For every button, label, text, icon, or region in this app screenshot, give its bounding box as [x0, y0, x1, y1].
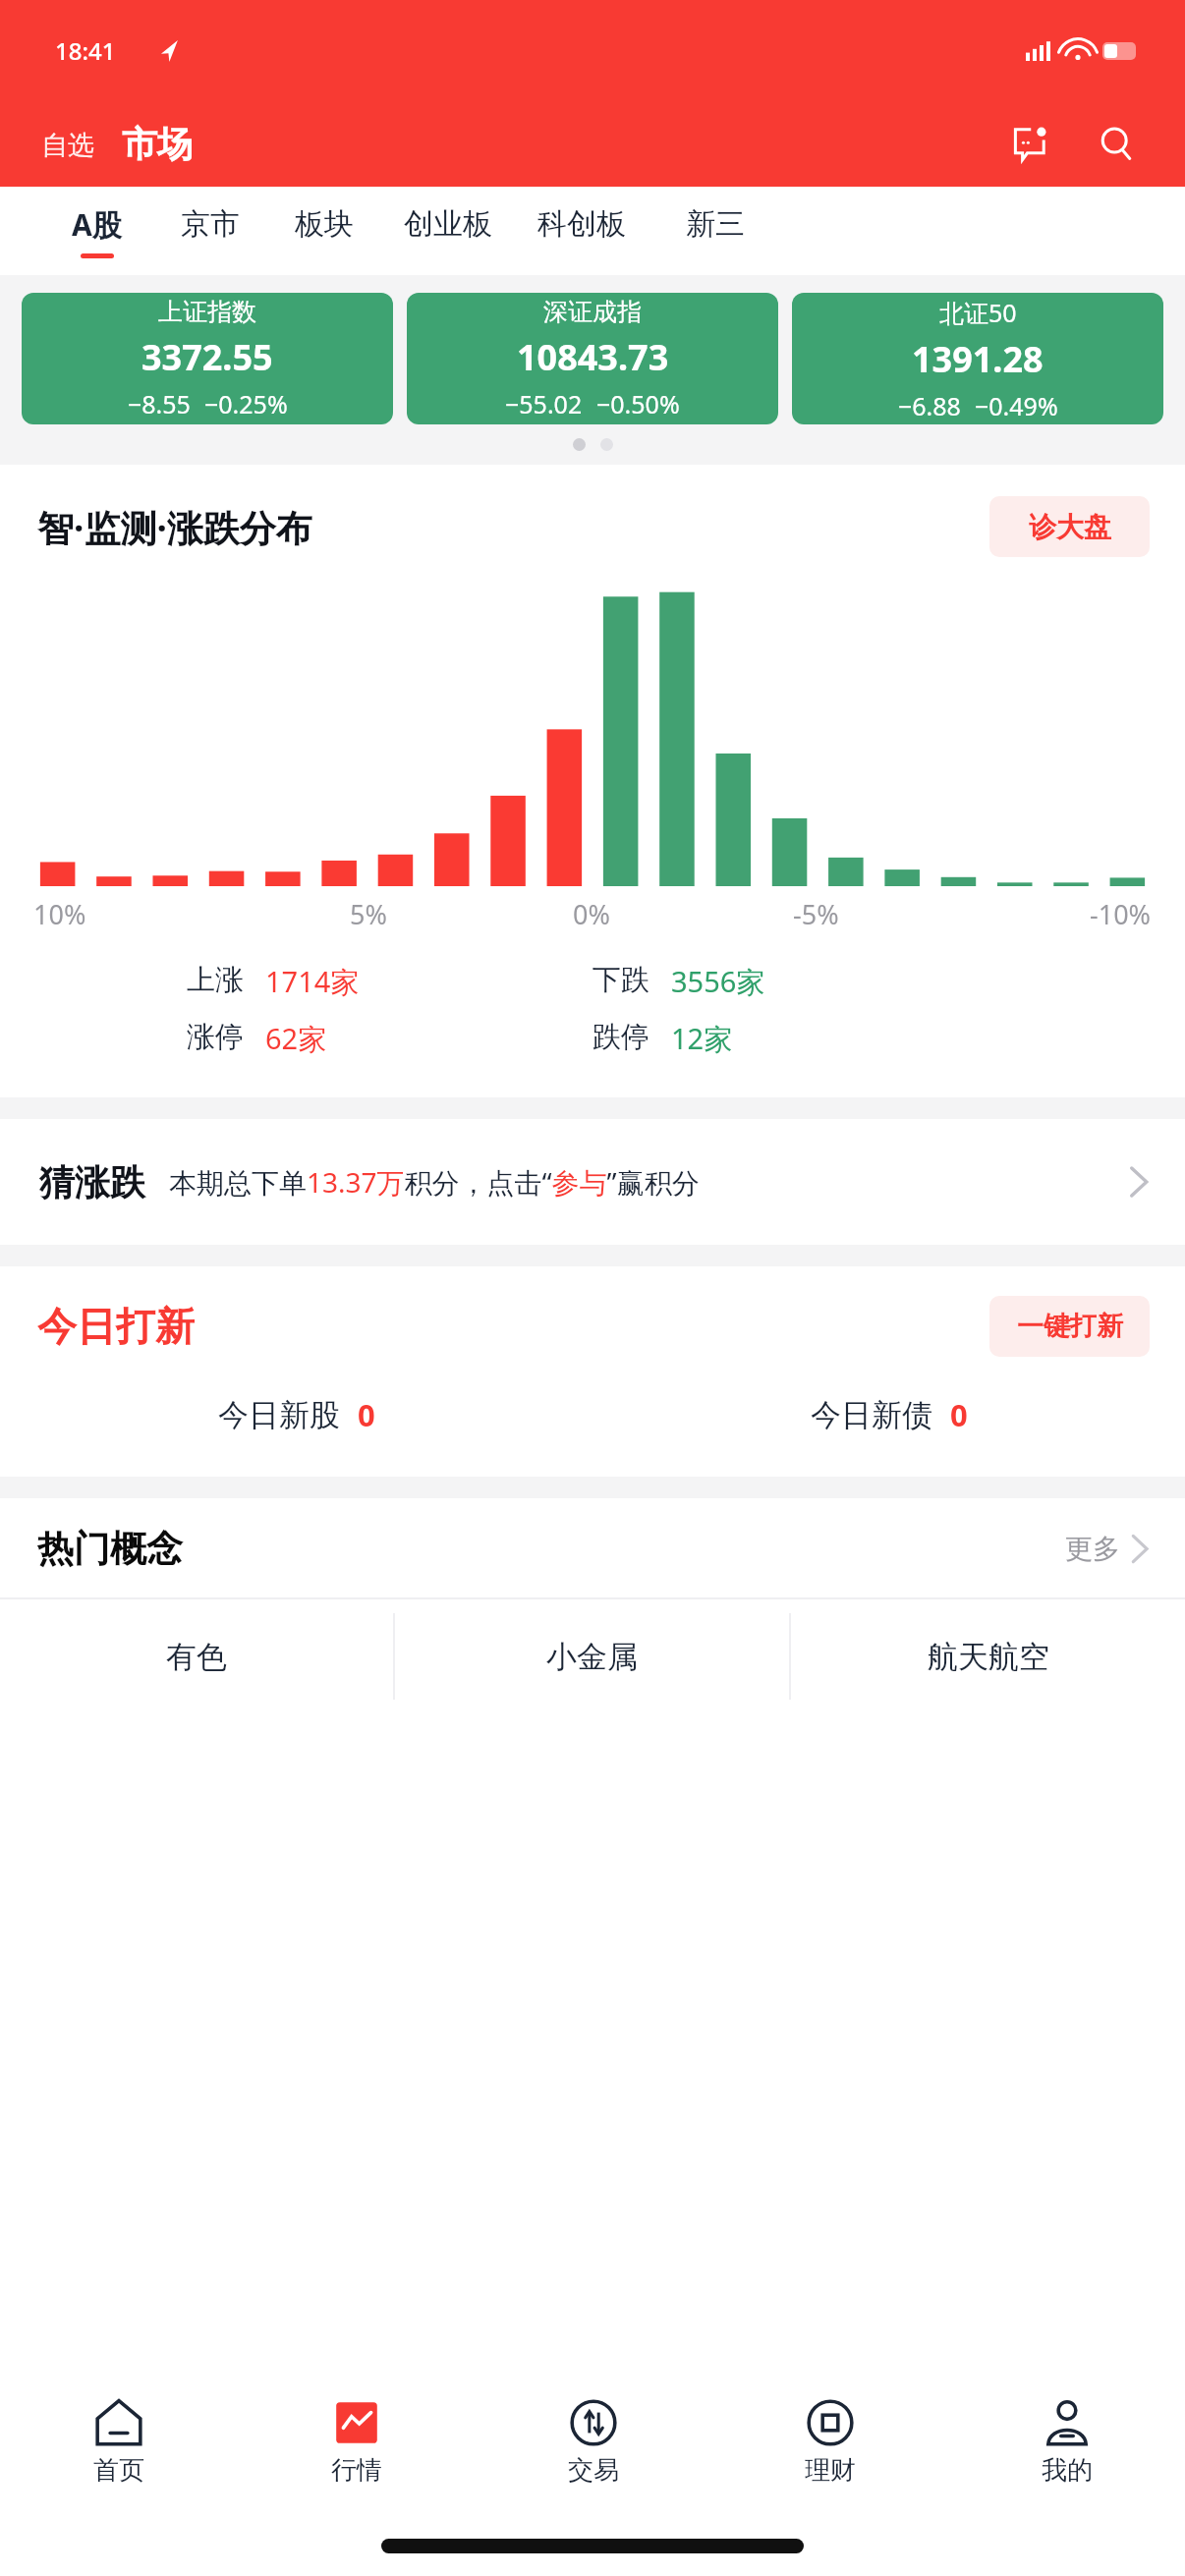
staticText: 更多: [1065, 1532, 1120, 1566]
staticText: A股: [72, 204, 122, 245]
staticText: 0%: [573, 896, 610, 932]
staticText: −8.55: [128, 387, 191, 420]
staticText: −55.02: [505, 387, 583, 420]
button[interactable]: 市场: [122, 122, 193, 166]
button[interactable]: 新三: [649, 187, 782, 275]
staticText: 下跌: [592, 962, 649, 998]
button[interactable]: 上证指数: [22, 293, 393, 424]
staticText: 涨停: [187, 1019, 244, 1055]
staticText: 热门概念: [37, 1526, 183, 1572]
staticText: 62家: [265, 1019, 327, 1058]
staticText: 1391.28: [912, 335, 1044, 383]
button[interactable]: 自选: [41, 129, 94, 166]
button[interactable]: 有色: [0, 1599, 393, 1713]
staticText: 小金属: [546, 1638, 638, 1676]
staticText: −0.50%: [596, 387, 680, 420]
button[interactable]: 北证50: [792, 293, 1163, 424]
staticText: 北证50: [939, 296, 1017, 329]
staticText: -5%: [793, 896, 839, 932]
button[interactable]: 热门概念: [37, 1526, 1152, 1572]
staticText: 3556家: [671, 962, 765, 1001]
button[interactable]: 诊大盘: [989, 496, 1150, 557]
staticText: 深证成指: [543, 297, 642, 327]
staticText: 今日新债: [811, 1396, 932, 1434]
staticText: 跌停: [592, 1019, 649, 1055]
staticText: 科创板: [537, 205, 626, 243]
staticText: 航天航空: [928, 1638, 1049, 1676]
staticText: 0: [358, 1394, 375, 1435]
staticText: 0: [950, 1394, 968, 1435]
staticText: 理财: [805, 2454, 856, 2487]
button[interactable]: 今日新债: [592, 1394, 1185, 1435]
staticText: 行情: [331, 2454, 382, 2487]
button[interactable]: 首页: [0, 2368, 238, 2515]
staticText: 本期总下单13.37万积分，点击“参与”赢积分: [169, 1163, 700, 1201]
staticText: 5%: [350, 896, 387, 932]
staticText: 3372.55: [141, 333, 273, 381]
staticText: 京市: [181, 205, 240, 243]
staticText: 上证指数: [158, 297, 256, 327]
staticText: 我的: [1042, 2454, 1093, 2487]
button[interactable]: 猜涨跌: [0, 1119, 1185, 1245]
staticText: 1714家: [265, 962, 360, 1001]
staticText: 诊大盘: [1029, 510, 1111, 544]
staticText: −6.88: [898, 389, 961, 422]
staticText: 上涨: [187, 962, 244, 998]
button[interactable]: 航天航空: [791, 1599, 1185, 1713]
button[interactable]: 小金属: [395, 1599, 789, 1713]
staticText: 智·监测·涨跌分布: [37, 502, 312, 552]
staticText: 一键打新: [1017, 1310, 1123, 1343]
staticText: 10843.73: [517, 333, 669, 381]
staticText: 有色: [166, 1638, 227, 1676]
staticText: 今日打新: [37, 1302, 195, 1351]
staticText: 首页: [93, 2454, 144, 2487]
staticText: 创业板: [404, 205, 492, 243]
staticText: 12家: [671, 1019, 733, 1058]
button[interactable]: Search: [1091, 118, 1144, 171]
button[interactable]: 板块: [267, 187, 381, 275]
staticText: 18:41: [55, 34, 116, 67]
staticText: 新三: [686, 205, 745, 243]
staticText: 今日新股: [218, 1396, 340, 1434]
button[interactable]: 理财: [711, 2368, 948, 2515]
button[interactable]: 我的: [948, 2368, 1185, 2515]
staticText: -10%: [1090, 896, 1152, 932]
button[interactable]: 创业板: [381, 187, 515, 275]
button[interactable]: 科创板: [515, 187, 649, 275]
staticText: 交易: [568, 2454, 619, 2487]
button[interactable]: 今日新股: [0, 1394, 592, 1435]
staticText: −0.25%: [204, 387, 288, 420]
button[interactable]: 深证成指: [407, 293, 778, 424]
button[interactable]: 京市: [153, 187, 267, 275]
button[interactable]: Messages: [1006, 118, 1059, 171]
button[interactable]: 一键打新: [989, 1296, 1150, 1357]
button[interactable]: 交易: [475, 2368, 711, 2515]
staticText: 板块: [295, 205, 354, 243]
button[interactable]: 行情: [238, 2368, 475, 2515]
staticText: 猜涨跌: [39, 1160, 145, 1204]
staticText: 10%: [33, 896, 86, 932]
button[interactable]: A股: [39, 187, 153, 275]
staticText: −0.49%: [975, 389, 1058, 422]
